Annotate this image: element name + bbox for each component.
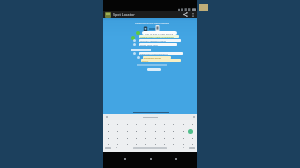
button[interactable]: Key (161, 135, 167, 141)
button[interactable]: Key (180, 121, 186, 127)
button[interactable]: Key (105, 135, 111, 141)
button[interactable]: Key (124, 121, 130, 127)
button[interactable]: Help (147, 68, 161, 71)
button[interactable]: App icon (105, 12, 111, 18)
button[interactable]: Key (142, 141, 148, 147)
button[interactable]: Key (152, 121, 158, 127)
button[interactable]: Key (133, 141, 139, 147)
button[interactable]: Key (105, 128, 111, 134)
staticText: Kitchen speaker ready (140, 39, 167, 42)
button[interactable]: Key (142, 128, 148, 134)
button[interactable]: Key (142, 121, 148, 127)
button[interactable]: Key (114, 128, 120, 134)
button[interactable]: Key (170, 135, 176, 141)
button[interactable]: Key (105, 141, 111, 147)
button[interactable]: Key (189, 121, 195, 127)
button[interactable]: Key (114, 135, 120, 141)
button[interactable]: Key (124, 135, 130, 141)
button[interactable]: Key (180, 128, 186, 134)
button[interactable]: Key (133, 128, 139, 134)
staticText: Living room lamp connected (140, 35, 174, 38)
button[interactable]: Front door lock (139, 43, 177, 46)
button[interactable]: Recents (171, 154, 180, 163)
staticText: Pending setup (144, 56, 161, 59)
button[interactable]: Key (161, 121, 167, 127)
button[interactable]: Start pairing (142, 31, 177, 35)
button[interactable]: Living room lamp connected (139, 35, 179, 38)
button[interactable]: Key (133, 135, 139, 141)
button[interactable]: More options (190, 12, 196, 18)
button[interactable]: Retry (141, 59, 181, 62)
staticText: Welcome to the setup wizard (135, 21, 169, 24)
button[interactable]: Home (146, 154, 155, 163)
button[interactable]: Key (161, 141, 167, 147)
button[interactable]: Key (152, 128, 158, 134)
button[interactable]: Key (170, 141, 176, 147)
staticText: Tap to pair a new device (145, 32, 174, 35)
button[interactable]: Enter (188, 129, 193, 134)
button[interactable]: Key (180, 135, 186, 141)
staticText: Bedroom thermostat 21 (140, 52, 169, 55)
button[interactable]: Key (105, 121, 111, 127)
button[interactable]: Bedroom thermostat 21 (139, 52, 183, 55)
staticText: Retry (142, 59, 149, 62)
button[interactable]: Kitchen speaker ready (139, 39, 181, 42)
button[interactable]: Key (124, 128, 130, 134)
button[interactable]: Key (189, 141, 195, 147)
button[interactable]: Key (114, 121, 120, 127)
button[interactable]: Key (114, 141, 120, 147)
button[interactable]: Key (152, 135, 158, 141)
staticText: Front door lock (140, 43, 158, 46)
button[interactable]: Key (180, 141, 186, 147)
button[interactable]: Key (142, 135, 148, 141)
staticText: Spot Locator (113, 12, 135, 17)
button[interactable]: Key (189, 135, 195, 141)
button[interactable]: Key (189, 128, 195, 134)
button[interactable]: Key (152, 141, 158, 147)
button[interactable]: Key (170, 128, 176, 134)
button[interactable]: Share (182, 11, 189, 18)
button[interactable]: Key (133, 121, 139, 127)
button[interactable]: Key (161, 128, 167, 134)
button[interactable]: Key (124, 141, 130, 147)
button[interactable]: Pending setup (143, 56, 171, 59)
button[interactable]: Back (120, 154, 129, 163)
button[interactable]: Key (170, 121, 176, 127)
